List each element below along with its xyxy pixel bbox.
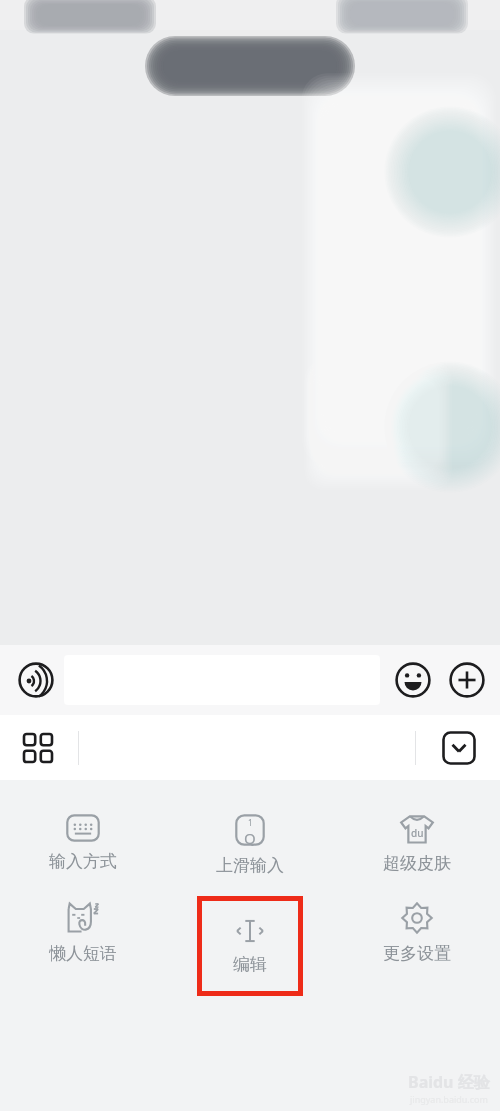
button[interactable]: Voice input (8, 652, 64, 708)
staticText: jingyan.baidu.com (410, 1093, 488, 1105)
button[interactable]: Emoji (386, 653, 440, 707)
button[interactable]: du (333, 808, 500, 880)
button[interactable]: 1 (166, 808, 333, 882)
staticText: 更多设置 (383, 943, 451, 964)
button[interactable]: 输入方式 (0, 808, 166, 878)
button[interactable]: Keyboard panel (10, 720, 66, 776)
button[interactable]: 更多设置 (333, 896, 500, 970)
staticText: 编辑 (233, 954, 267, 975)
staticText: Q (244, 828, 256, 846)
button[interactable]: Hide keyboard (432, 721, 486, 775)
staticText: 上滑输入 (216, 855, 284, 876)
staticText: Baidu 经验 (408, 1071, 490, 1093)
button[interactable]: More (440, 653, 494, 707)
staticText: 1 (248, 817, 253, 828)
staticText: 超级皮肤 (383, 853, 451, 874)
staticText: 懒人短语 (49, 943, 117, 964)
staticText: 输入方式 (49, 851, 117, 872)
staticText: du (411, 826, 424, 840)
button[interactable]: 懒人短语 (0, 896, 166, 970)
button[interactable]: 编辑 (202, 901, 298, 991)
